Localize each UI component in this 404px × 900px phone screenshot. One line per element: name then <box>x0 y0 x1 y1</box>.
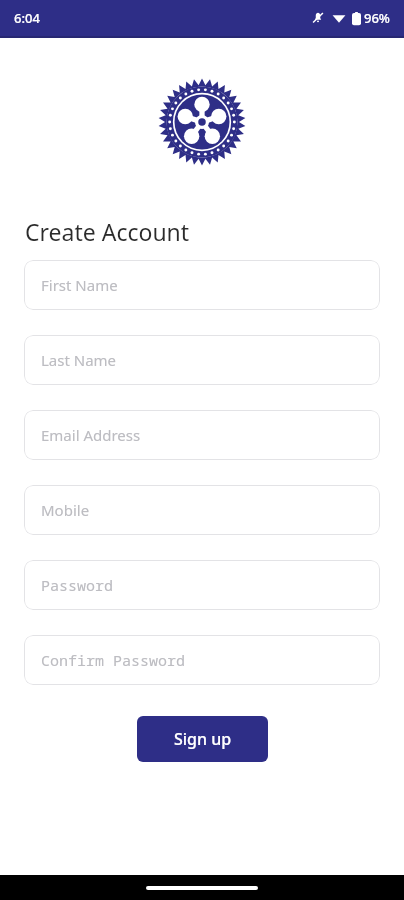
button[interactable]: Sign up <box>137 716 268 762</box>
button[interactable]: Confirm Password <box>24 635 380 685</box>
staticText: Last Name <box>41 350 117 370</box>
staticText: Mobile <box>41 500 90 520</box>
staticText: 6:04 <box>14 9 40 27</box>
staticText: Confirm Password <box>41 650 186 670</box>
button[interactable]: Last Name <box>24 335 380 385</box>
button[interactable]: Email Address <box>24 410 380 460</box>
staticText: Create Account <box>25 216 190 247</box>
staticText: Password <box>41 575 114 595</box>
button[interactable]: Password <box>24 560 380 610</box>
button[interactable]: First Name <box>24 260 380 310</box>
staticText: Email Address <box>41 425 141 445</box>
staticText: 96% <box>364 9 390 27</box>
button[interactable]: Mobile <box>24 485 380 535</box>
staticText: First Name <box>41 275 118 295</box>
staticText: Sign up <box>174 728 232 750</box>
